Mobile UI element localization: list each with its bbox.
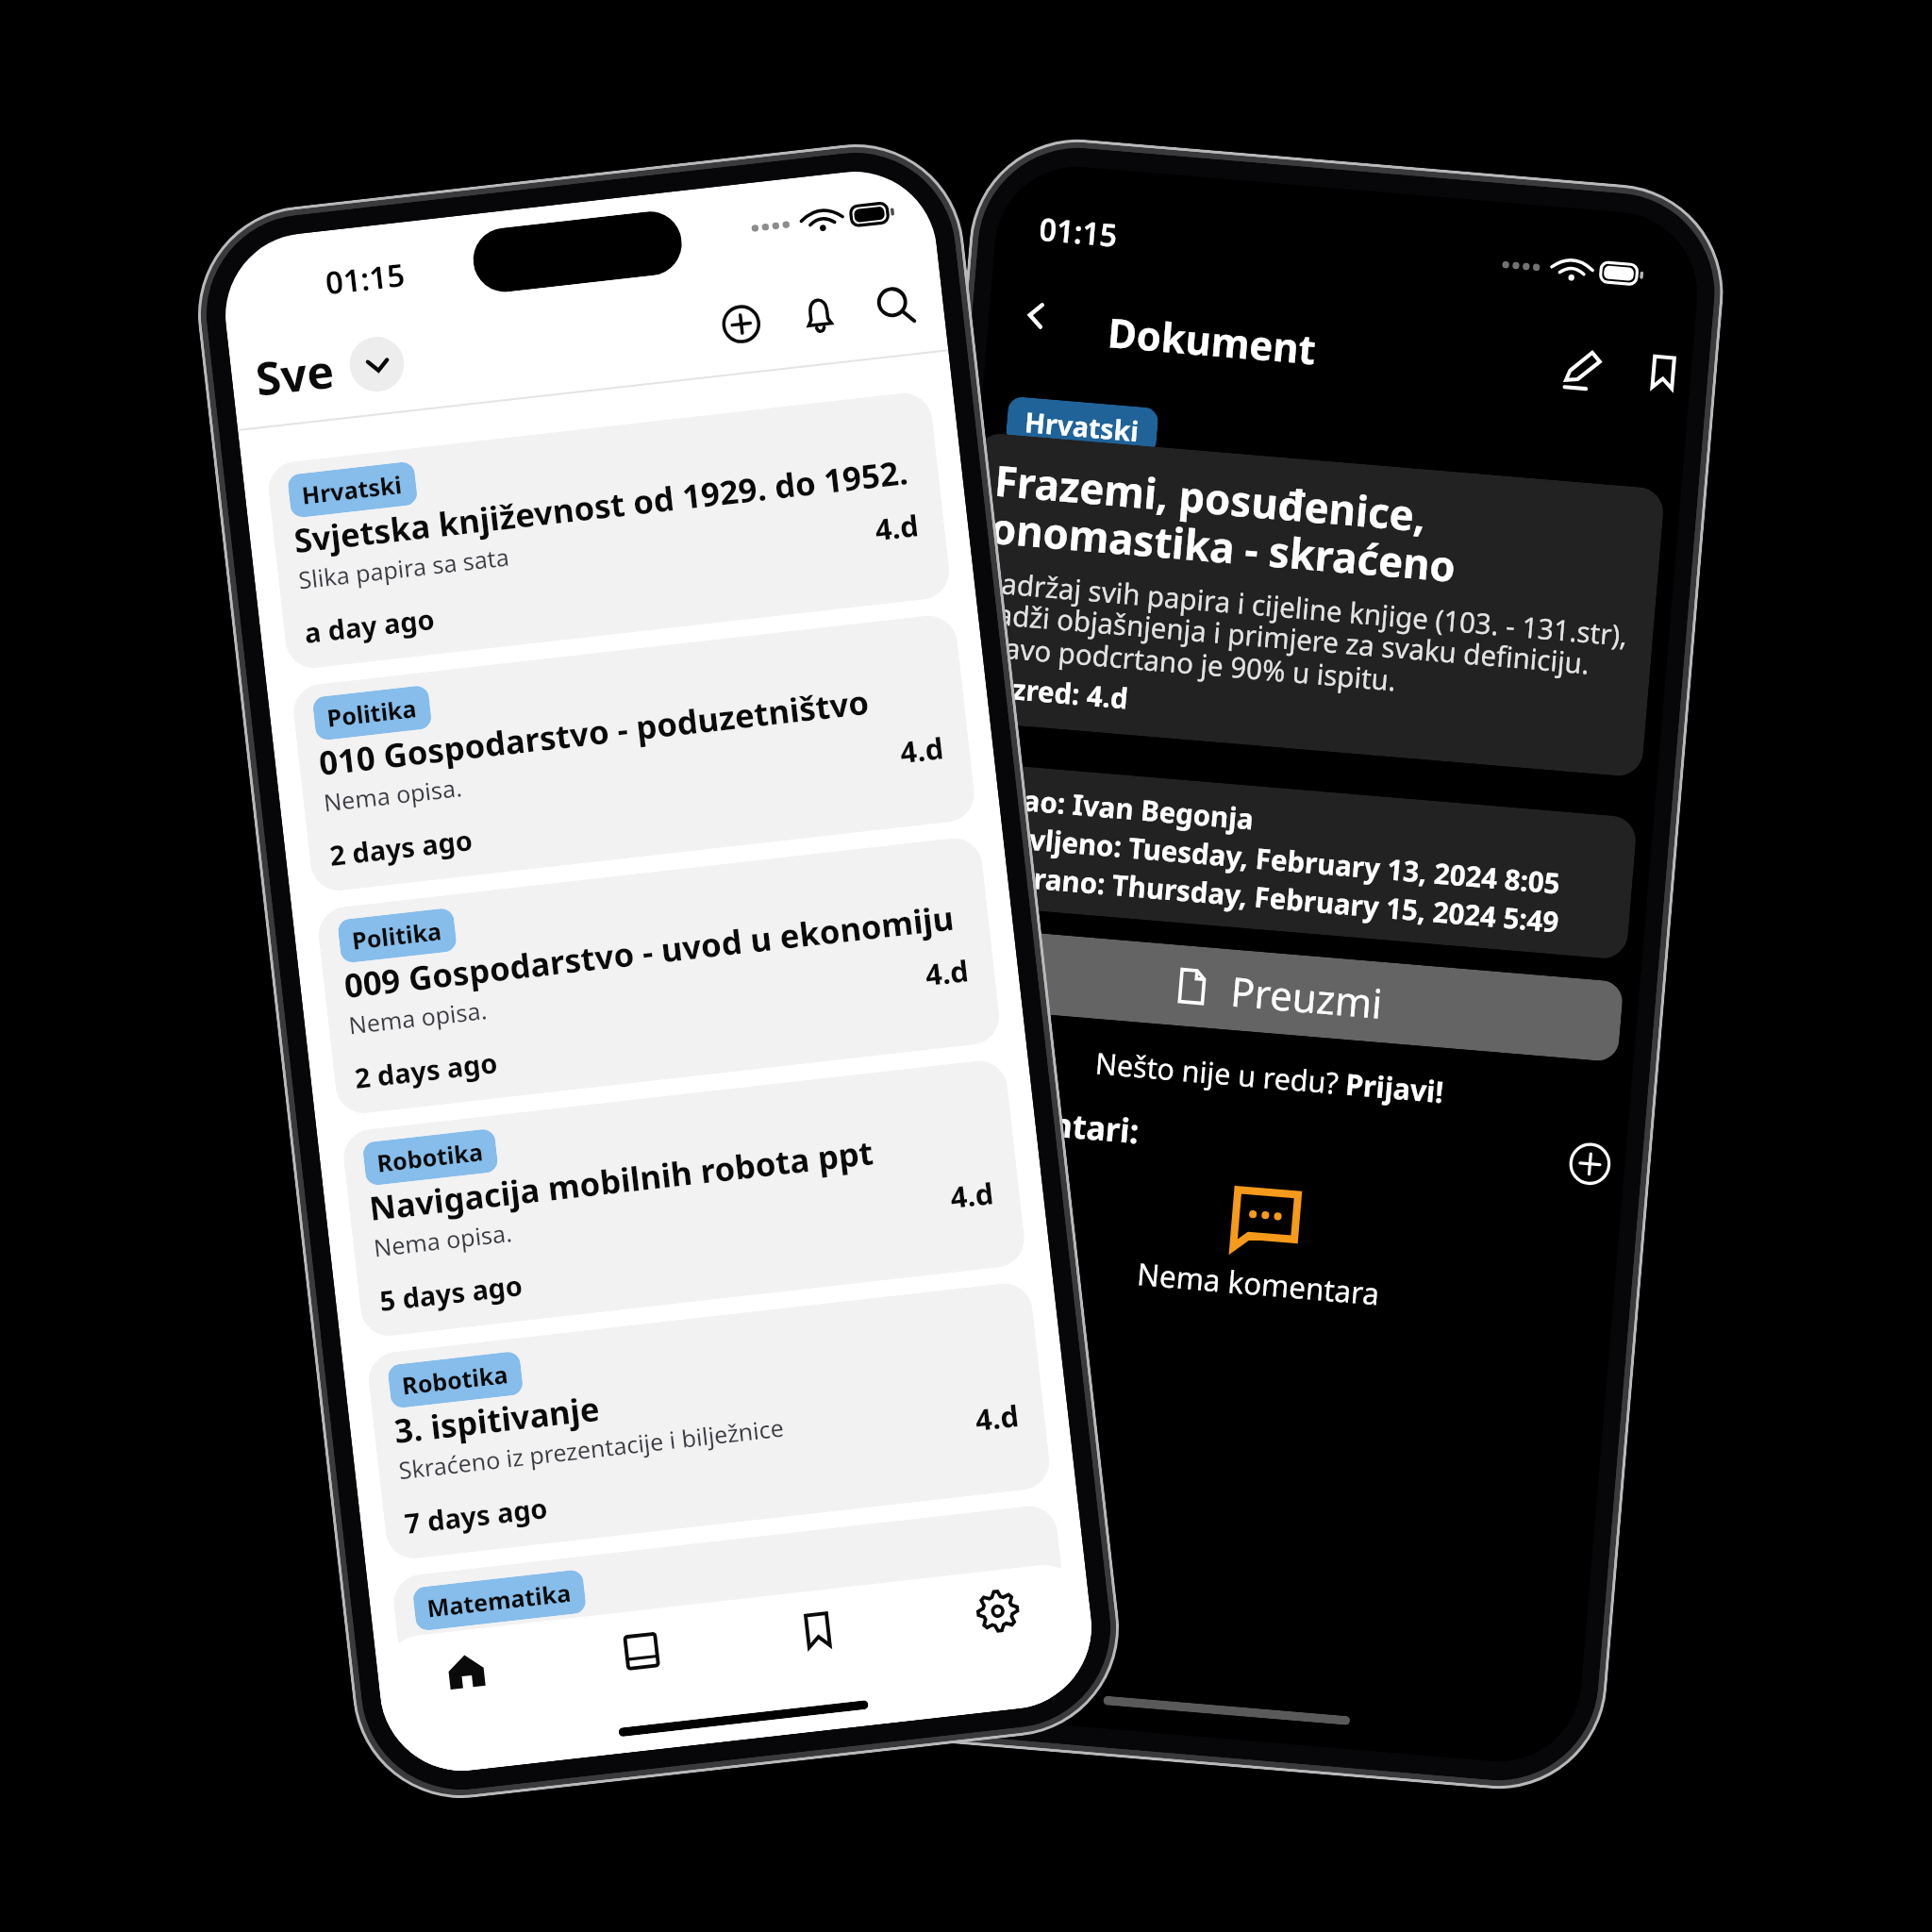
- staticText: Kompleksni brojevi: [417, 1597, 733, 1677]
- staticText: Matematika: [425, 1576, 574, 1625]
- button[interactable]: Sve: [252, 330, 407, 409]
- staticText: Nešto nije u redu?: [1094, 1043, 1347, 1104]
- staticText: a day ago: [302, 600, 437, 651]
- staticText: Navigacija mobilnih robota ppt: [367, 1130, 876, 1232]
- button[interactable]: Settings: [953, 1566, 1041, 1655]
- staticText: 010 Gospodarstvo - poduzetništvo: [317, 679, 872, 786]
- button[interactable]: Notifications: [780, 276, 856, 353]
- staticText: Nema opisa.: [322, 771, 465, 819]
- staticText: Frazemi, posuđenice, onomastika - skraće…: [989, 450, 1642, 610]
- button[interactable]: Add comment: [1560, 1133, 1618, 1193]
- staticText: Preuzmi: [1229, 962, 1385, 1030]
- staticText: 01:15: [323, 253, 408, 304]
- staticText: Komentari:: [958, 1094, 1142, 1155]
- staticText: Politika: [350, 914, 444, 957]
- staticText: 4.d: [923, 950, 971, 995]
- staticText: 4.d: [973, 1396, 1021, 1440]
- button[interactable]: Preuzmi: [931, 925, 1624, 1062]
- button[interactable]: Politika: [291, 613, 977, 894]
- button[interactable]: Home: [421, 1626, 509, 1714]
- staticText: Hrvatski: [300, 468, 405, 512]
- staticText: Skraćeno iz prezentacije i bilježnice: [397, 1411, 786, 1487]
- staticText: 4.d: [873, 505, 921, 550]
- staticText: 2 days ago: [353, 1044, 499, 1096]
- staticText: Nema opisa.: [422, 1661, 565, 1709]
- staticText: Svjetska književnost od 1929. do 1952.: [292, 449, 912, 564]
- staticText: 8 days ago: [428, 1711, 575, 1764]
- staticText: Dokument: [1106, 303, 1319, 376]
- staticText: Ažurirano: Thursday, February 15, 2024 5…: [961, 852, 1609, 944]
- staticText: 009 Gospodarstvo - uvod u ekonomiju: [342, 895, 956, 1009]
- button[interactable]: Prijavi!: [1344, 1064, 1446, 1112]
- staticText: Slika papira sa sata: [297, 540, 512, 596]
- staticText: Robotika: [400, 1357, 511, 1402]
- staticText: 4.d: [898, 728, 946, 772]
- staticText: Nema komentara: [1136, 1252, 1382, 1313]
- staticText: Sadržaj svih papira i cijeline knjige (1…: [979, 561, 1633, 719]
- button[interactable]: Robotika: [341, 1058, 1027, 1339]
- button[interactable]: Politika: [316, 835, 1002, 1116]
- staticText: 2 days ago: [328, 821, 474, 873]
- button[interactable]: Search: [858, 268, 934, 344]
- button[interactable]: Robotika: [366, 1280, 1052, 1561]
- staticText: 4.d: [948, 1173, 996, 1218]
- staticText: Nema opisa.: [347, 993, 490, 1042]
- staticText: Politika: [325, 692, 419, 734]
- button[interactable]: Library: [596, 1606, 685, 1695]
- staticText: Dodao: Ivan Begonja: [967, 775, 1256, 837]
- button[interactable]: Back: [1001, 280, 1071, 351]
- staticText: Objavljeno: Tuesday, February 13, 2024 8…: [964, 813, 1612, 905]
- staticText: Razred: 4.d: [976, 665, 1131, 716]
- button[interactable]: Hrvatski: [265, 390, 952, 671]
- staticText: 4.d: [998, 1618, 1046, 1663]
- button[interactable]: Matematika: [391, 1503, 1077, 1777]
- staticText: Nema opisa.: [372, 1216, 515, 1264]
- button[interactable]: Edit: [1547, 333, 1617, 404]
- button[interactable]: Bookmark: [1628, 336, 1694, 407]
- staticText: 01:15: [1038, 208, 1120, 256]
- button[interactable]: Add: [702, 285, 778, 362]
- button[interactable]: Saved: [774, 1586, 862, 1675]
- staticText: Robotika: [375, 1135, 486, 1180]
- staticText: Sve: [252, 338, 337, 409]
- staticText: Hrvatski: [1023, 403, 1141, 449]
- staticText: 7 days ago: [403, 1489, 550, 1541]
- staticText: 5 days ago: [378, 1266, 525, 1318]
- staticText: 3. ispitivanje: [392, 1386, 603, 1454]
